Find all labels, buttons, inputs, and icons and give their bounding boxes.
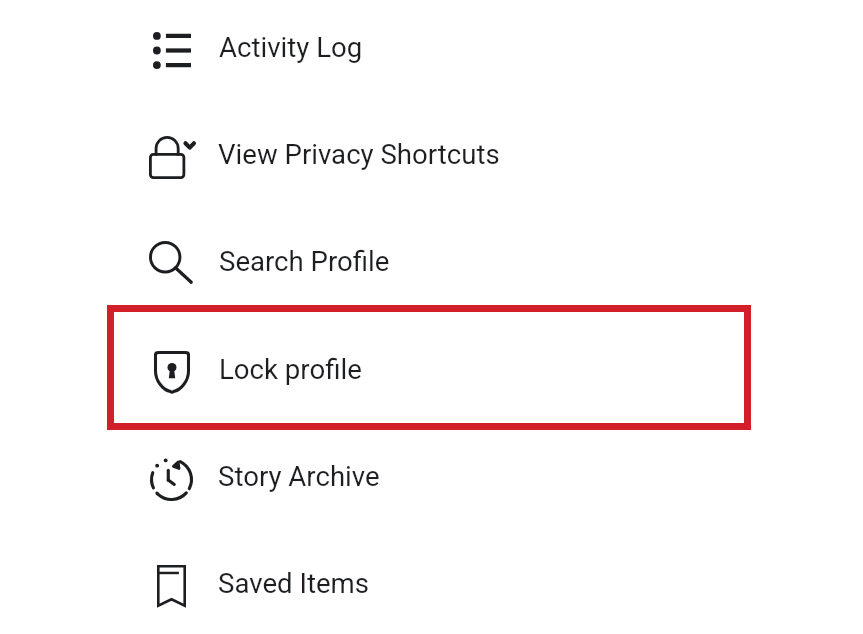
button[interactable]: Search Profile (0, 207, 863, 314)
staticText: Lock profile (219, 353, 362, 385)
button[interactable]: Saved Items (0, 529, 863, 634)
button[interactable]: Activity Log (0, 0, 863, 100)
other: Story Archive (150, 458, 193, 501)
other: View Privacy Shortcuts (149, 136, 194, 179)
staticText: Story Archive (218, 460, 380, 492)
other: Lock profile (154, 351, 190, 393)
staticText: Saved Items (218, 567, 370, 599)
button[interactable]: View Privacy Shortcuts (0, 100, 863, 207)
other: Search Profile (149, 241, 193, 284)
staticText: Search Profile (219, 245, 390, 277)
button[interactable]: Story Archive (0, 422, 863, 529)
button[interactable]: Lock profile (0, 315, 863, 422)
other: Activity Log (153, 32, 191, 69)
staticText: View Privacy Shortcuts (218, 138, 500, 170)
staticText: Activity Log (219, 31, 363, 63)
other: Saved Items (157, 565, 186, 607)
